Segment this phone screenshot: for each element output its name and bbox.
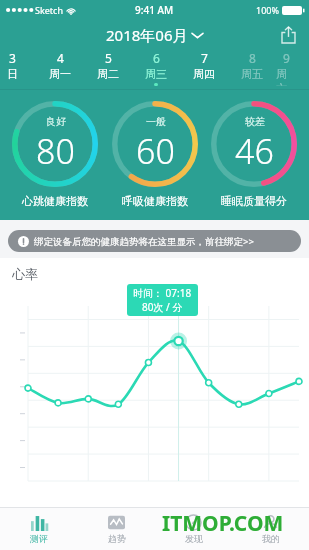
staticText: 9	[283, 50, 290, 66]
staticText: 60	[136, 128, 175, 174]
staticText: 测评	[30, 533, 48, 544]
button[interactable]: 3	[0, 50, 36, 86]
staticText: 周五	[241, 67, 263, 81]
staticText: 周六	[276, 67, 297, 86]
staticText: 80	[36, 128, 75, 174]
button[interactable]: Share	[275, 22, 301, 48]
staticText: 6	[153, 50, 160, 66]
staticText: 5	[105, 50, 112, 66]
button[interactable]: 7	[180, 50, 228, 86]
staticText: 8	[249, 50, 256, 66]
staticText: 4	[57, 50, 64, 66]
staticText: 较差	[245, 115, 265, 128]
staticText: 日	[7, 67, 18, 81]
staticText: 绑定设备后您的健康趋势将在这里显示，前往绑定>>	[34, 235, 254, 248]
button[interactable]: 绑定设备后您的健康趋势将在这里显示，前往绑定>>	[8, 230, 301, 252]
button[interactable]: 一般	[111, 100, 199, 208]
button[interactable]: 较差	[210, 100, 298, 208]
button[interactable]: 6	[132, 50, 180, 86]
button[interactable]: 5	[84, 50, 132, 86]
button[interactable]: 趋势	[78, 508, 155, 550]
staticText: 呼吸健康指数	[122, 194, 188, 208]
staticText: 一般	[146, 115, 166, 128]
staticText: 周一	[49, 67, 71, 81]
button[interactable]: 发现	[155, 508, 232, 550]
staticText: 46	[235, 128, 274, 174]
staticText: 发现	[185, 533, 203, 544]
button[interactable]: 良好	[11, 100, 99, 208]
staticText: 睡眠质量得分	[221, 194, 287, 208]
staticText: 周四	[193, 67, 215, 81]
staticText: 2018年06月	[106, 25, 188, 45]
button[interactable]: 8	[228, 50, 276, 86]
staticText: 周二	[97, 67, 119, 81]
staticText: 心率	[12, 266, 38, 282]
staticText: 80次 / 分	[142, 300, 183, 314]
button[interactable]: 2018年06月	[106, 25, 203, 45]
staticText: 7	[201, 50, 208, 66]
button[interactable]: 测评	[0, 508, 78, 550]
staticText: 我的	[262, 533, 280, 544]
button[interactable]: 9	[276, 50, 297, 86]
staticText: 100%	[256, 4, 279, 16]
button[interactable]: 4	[36, 50, 84, 86]
staticText: 良好	[46, 115, 66, 128]
button[interactable]: 我的	[232, 508, 309, 550]
staticText: 时间： 07:18	[133, 286, 192, 300]
staticText: 9:41 AM	[135, 3, 174, 17]
staticText: ITMOP.COM	[162, 509, 284, 538]
staticText: 趋势	[108, 533, 126, 544]
staticText: Sketch	[35, 4, 63, 16]
staticText: 心跳健康指数	[22, 194, 88, 208]
staticText: 周三	[145, 67, 167, 81]
staticText: 3	[9, 50, 16, 66]
